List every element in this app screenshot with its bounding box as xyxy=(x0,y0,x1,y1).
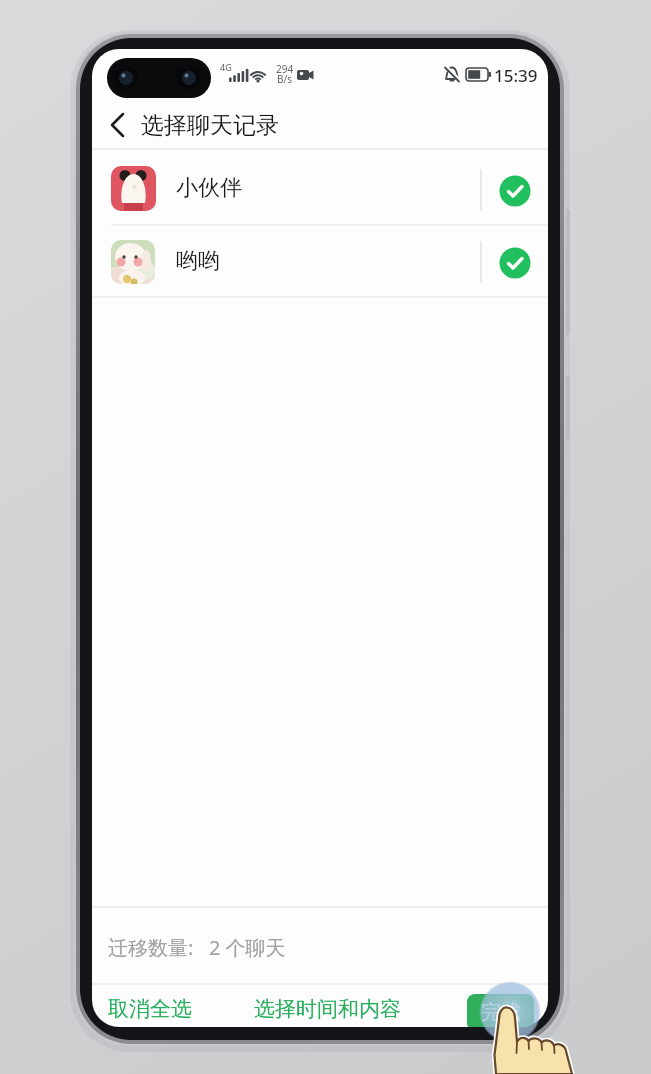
staticText: 小伙伴 xyxy=(176,174,242,202)
staticText: 取消全选 xyxy=(108,996,192,1022)
staticText: B/s xyxy=(277,72,293,86)
staticText: 选择时间和内容 xyxy=(254,996,401,1022)
staticText: 迁移数量: 2 个聊天 xyxy=(108,934,286,961)
staticText: 15:39 xyxy=(494,64,538,87)
staticText: 哟哟 xyxy=(176,247,220,275)
staticText: 完成 xyxy=(481,1000,521,1025)
staticText: 选择聊天记录 xyxy=(141,111,279,140)
staticText: 4G xyxy=(220,61,232,73)
staticText: 294 xyxy=(276,62,294,76)
